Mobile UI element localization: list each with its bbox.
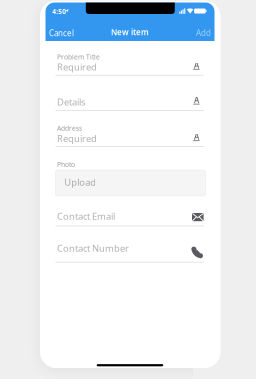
- button[interactable]: Cancel: [49, 28, 74, 38]
- staticText: A: [194, 60, 199, 71]
- staticText: Required: [57, 132, 97, 144]
- staticText: A: [194, 95, 199, 105]
- staticText: 4:50: [52, 7, 66, 16]
- button[interactable]: Upload: [55, 170, 205, 196]
- staticText: A: [194, 131, 199, 142]
- staticText: Contact Number: [57, 242, 129, 254]
- staticText: Photo: [57, 160, 75, 169]
- staticText: Address: [57, 124, 82, 133]
- button[interactable]: Address: [55, 124, 204, 147]
- staticText: Required: [57, 61, 97, 73]
- button[interactable]: Contact Email: [55, 210, 204, 226]
- button[interactable]: Problem Title: [55, 52, 204, 76]
- button[interactable]: Add: [196, 28, 211, 38]
- button[interactable]: Contact Number: [55, 242, 204, 263]
- staticText: Details: [57, 96, 85, 108]
- staticText: Add: [196, 28, 211, 38]
- staticText: New item: [111, 27, 149, 37]
- staticText: Problem Title: [57, 52, 100, 61]
- staticText: Contact Email: [57, 210, 115, 222]
- staticText: Upload: [64, 176, 96, 188]
- button[interactable]: Details: [55, 96, 204, 111]
- staticText: Cancel: [49, 28, 74, 38]
